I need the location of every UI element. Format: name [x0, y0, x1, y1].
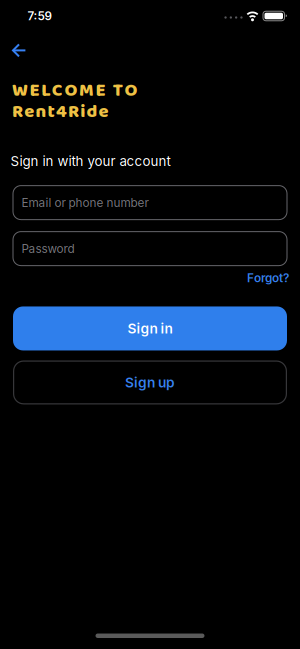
button[interactable]: Forgot?: [247, 271, 289, 285]
staticText: n: [35, 98, 46, 126]
staticText: Sign in: [127, 320, 172, 337]
button[interactable]: Back: [0, 40, 32, 60]
staticText: Password: [21, 242, 74, 255]
staticText: e: [99, 98, 109, 126]
staticText: 7:59: [27, 9, 52, 23]
staticText: E: [30, 76, 40, 105]
staticText: Email or phone number: [21, 196, 148, 209]
staticText: R: [12, 98, 23, 126]
staticText: t: [48, 98, 55, 126]
staticText: 4: [56, 98, 67, 126]
staticText: e: [24, 98, 34, 126]
staticText: C: [52, 76, 63, 105]
staticText: Sign up: [125, 374, 175, 391]
button[interactable]: Sign up: [13, 360, 287, 404]
button[interactable]: Sign in: [13, 306, 287, 350]
staticText: M: [79, 76, 94, 105]
staticText: d: [86, 98, 97, 126]
staticText: L: [41, 76, 50, 105]
staticText: W: [12, 76, 28, 105]
staticText: Forgot?: [247, 271, 289, 285]
staticText: i: [80, 98, 85, 126]
staticText: R: [68, 98, 79, 126]
staticText: O: [124, 76, 137, 105]
staticText: E: [96, 76, 106, 105]
staticText: T: [113, 76, 123, 105]
staticText: Sign in with your account: [10, 153, 170, 169]
staticText: O: [64, 76, 77, 105]
